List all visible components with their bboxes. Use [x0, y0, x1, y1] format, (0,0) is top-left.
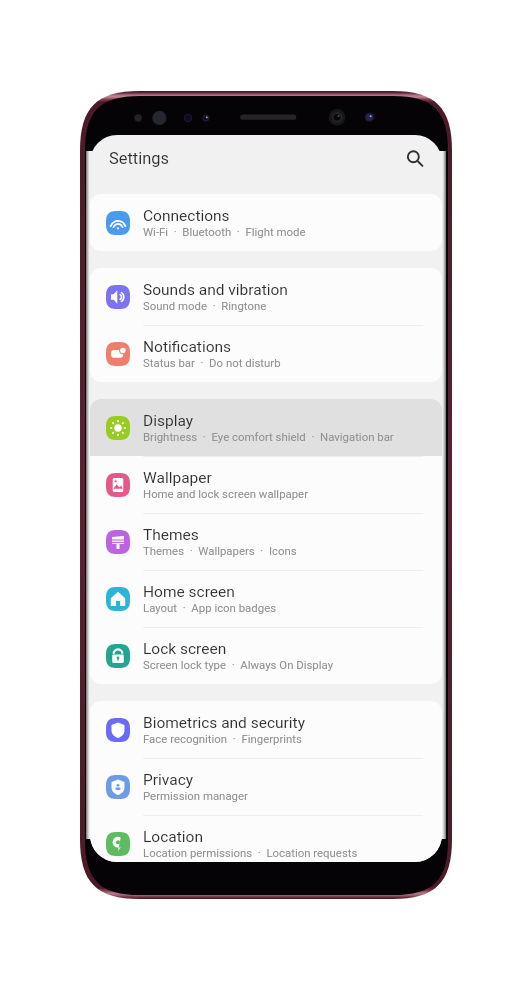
- button[interactable]: Display: [90, 399, 442, 456]
- staticText: Brightness · Eye comfort shield · Naviga…: [143, 430, 394, 443]
- staticText: Themes: [143, 526, 199, 544]
- staticText: Wallpaper: [143, 469, 212, 487]
- button[interactable]: Notifications: [90, 325, 442, 382]
- button[interactable]: Privacy: [90, 758, 442, 815]
- staticText: Settings: [109, 149, 169, 168]
- staticText: Home screen: [143, 583, 235, 601]
- button[interactable]: Biometrics and security: [90, 701, 442, 758]
- button[interactable]: Location: [90, 815, 442, 862]
- staticText: Home and lock screen wallpaper: [143, 487, 309, 500]
- staticText: Face recognition · Fingerprints: [143, 732, 302, 745]
- staticText: Permission manager: [143, 789, 248, 802]
- staticText: Display: [143, 412, 194, 430]
- staticText: Layout · App icon badges: [143, 601, 277, 614]
- button[interactable]: Wallpaper: [90, 456, 442, 513]
- staticText: Themes · Wallpapers · Icons: [143, 544, 297, 557]
- staticText: Sounds and vibration: [143, 281, 288, 299]
- button[interactable]: Sounds and vibration: [90, 268, 442, 325]
- staticText: Location: [143, 828, 203, 846]
- staticText: Wi-Fi · Bluetooth · Flight mode: [143, 225, 306, 238]
- staticText: Location permissions · Location requests: [143, 846, 358, 859]
- staticText: Status bar · Do not disturb: [143, 356, 281, 369]
- staticText: Notifications: [143, 338, 232, 356]
- staticText: Biometrics and security: [143, 714, 306, 732]
- button[interactable]: Themes: [90, 513, 442, 570]
- button[interactable]: Lock screen: [90, 627, 442, 684]
- button[interactable]: Home screen: [90, 570, 442, 627]
- staticText: Screen lock type · Always On Display: [143, 658, 334, 671]
- button[interactable]: Connections: [90, 194, 442, 251]
- button[interactable]: Search: [396, 140, 434, 178]
- staticText: Privacy: [143, 771, 194, 789]
- staticText: Sound mode · Ringtone: [143, 299, 267, 312]
- staticText: Connections: [143, 207, 230, 225]
- staticText: Lock screen: [143, 640, 227, 658]
